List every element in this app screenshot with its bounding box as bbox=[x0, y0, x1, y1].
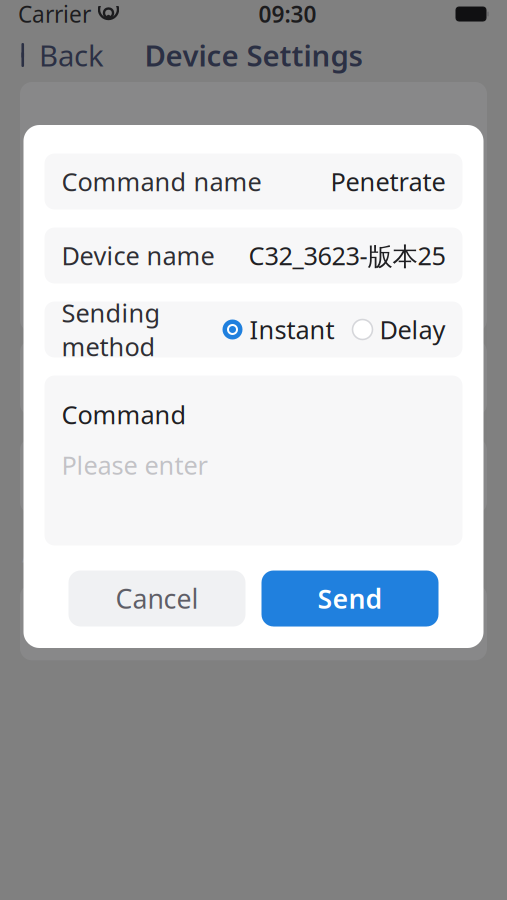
button[interactable]: Instant bbox=[222, 313, 334, 346]
staticText: Command bbox=[61, 397, 186, 431]
staticText: Reset Password bbox=[92, 457, 303, 495]
button[interactable]: Cancel bbox=[68, 570, 245, 626]
button[interactable]: Delay bbox=[352, 313, 445, 346]
staticText: Carrier bbox=[18, 0, 91, 29]
button[interactable]: Reset Password bbox=[0, 438, 507, 514]
button[interactable]: Sound Reminding bbox=[403, 605, 465, 639]
button[interactable]: Back bbox=[0, 30, 122, 80]
staticText: Sound Reminding bbox=[92, 604, 331, 641]
staticText: Instant bbox=[249, 313, 334, 346]
staticText: C32_3623-版本25 bbox=[248, 239, 445, 272]
button[interactable]: Send bbox=[261, 570, 438, 626]
staticText: Please enter bbox=[61, 448, 207, 482]
staticText: Back bbox=[39, 35, 104, 74]
staticText: Device Message bbox=[92, 359, 307, 397]
button[interactable]: Device Message bbox=[0, 340, 507, 416]
staticText: 09:30 bbox=[258, 0, 316, 29]
staticText: Device Settings bbox=[144, 35, 362, 74]
staticText: Delay bbox=[379, 313, 445, 346]
staticText: Sending method bbox=[61, 296, 160, 363]
staticText: Send bbox=[317, 581, 382, 616]
staticText: Device name bbox=[61, 239, 214, 272]
staticText: Alarm Reminder bbox=[22, 540, 187, 568]
staticText: Command name bbox=[61, 165, 261, 198]
staticText: Penetrate bbox=[330, 165, 445, 198]
staticText: Cancel bbox=[115, 581, 198, 616]
